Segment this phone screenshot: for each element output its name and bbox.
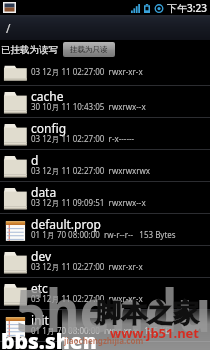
button[interactable]: init	[0, 310, 210, 342]
staticText: 03 12月 11 02:27:00 rwxrwxrwx	[31, 165, 151, 176]
button[interactable]: cache	[0, 86, 210, 118]
staticText: cache	[31, 88, 64, 104]
staticText: init	[31, 312, 49, 328]
staticText: 03 12月 11 02:27:00 rwxr-xr-x	[31, 66, 143, 77]
staticText: default.prop	[31, 216, 101, 232]
staticText: 03 12月 11 02:27:00 rwxr-xr-x	[31, 293, 143, 304]
button[interactable]: 03 12月 11 02:27:00 rwxr-xr-x	[0, 59, 210, 86]
staticText: 5hendu	[16, 268, 210, 350]
button[interactable]: 挂载为只读	[63, 42, 115, 57]
staticText: jiaochengzhijia.com	[64, 335, 144, 346]
staticText: data	[31, 184, 57, 200]
button[interactable]: default.prop	[0, 214, 210, 246]
staticText: config	[31, 120, 67, 136]
staticText: d	[31, 152, 39, 168]
staticText: 下午3:23	[167, 1, 207, 15]
staticText: 03 12月 11 09:09:51 rwxrwx--x	[31, 197, 146, 208]
button[interactable]: etc	[0, 278, 210, 310]
button[interactable]: data	[0, 182, 210, 214]
staticText: 30 10月 11 10:43:05 rwxrwx--x	[31, 101, 146, 112]
button[interactable]: config	[0, 118, 210, 150]
staticText: bbs.shen	[1, 327, 97, 350]
staticText: 脚本之家	[95, 297, 199, 330]
button[interactable]: dev	[0, 246, 210, 278]
staticText: 挂载为只读	[70, 45, 108, 54]
button[interactable]: d	[0, 150, 210, 182]
staticText: 01 1月 70 08:00:00 rw-r--r-- 153 Bytes	[31, 229, 176, 240]
staticText: etc	[31, 280, 48, 296]
button[interactable]: /	[0, 15, 210, 40]
staticText: 01 1月 70 08:00:00 rwxr-xr-x 105 KB	[31, 325, 171, 336]
staticText: dev	[31, 248, 52, 264]
staticText: 已挂载为读写	[1, 44, 58, 56]
staticText: www.jb51.net	[110, 324, 199, 342]
staticText: 03 12月 11 02:27:00 r-x------	[31, 133, 135, 144]
staticText: /	[6, 20, 11, 36]
staticText: 03 12月 11 02:27:00 rwxr-xr-x	[31, 261, 143, 272]
